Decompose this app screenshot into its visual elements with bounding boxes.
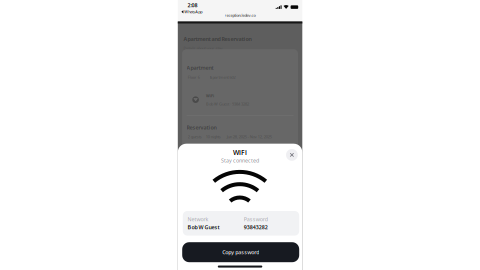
staticText: Stay connected [221, 157, 259, 164]
staticText: Bob W Guest · 9384 3282 [206, 101, 249, 107]
staticText: 2:08 [187, 2, 197, 9]
staticText: Jun 28, 2025 - Nov 12, 2025 [227, 134, 272, 139]
staticText: reception.ledev.co [225, 12, 256, 18]
button[interactable]: Copy password [182, 242, 299, 262]
staticText: WiFi [206, 93, 214, 98]
staticText: Password [244, 216, 268, 223]
staticText: Reservation [187, 124, 217, 131]
staticText: Bob W Guest [187, 224, 219, 231]
staticText: 2 guests [188, 134, 202, 139]
staticText: Copy password [222, 249, 259, 256]
staticText: WhatsApp [184, 9, 202, 14]
staticText: 93843282 [244, 224, 268, 231]
button[interactable]: Close [286, 149, 298, 161]
staticText: WiFi [233, 148, 247, 157]
staticText: Apartment [187, 64, 214, 71]
staticText: Network [187, 216, 208, 223]
staticText: 10 nights [206, 134, 221, 139]
staticText: Floor 6 [188, 74, 200, 80]
staticText: Apartment 602 [210, 74, 236, 80]
staticText: Apartment and Reservation [183, 35, 251, 42]
staticText: Details about your stay [183, 46, 222, 51]
